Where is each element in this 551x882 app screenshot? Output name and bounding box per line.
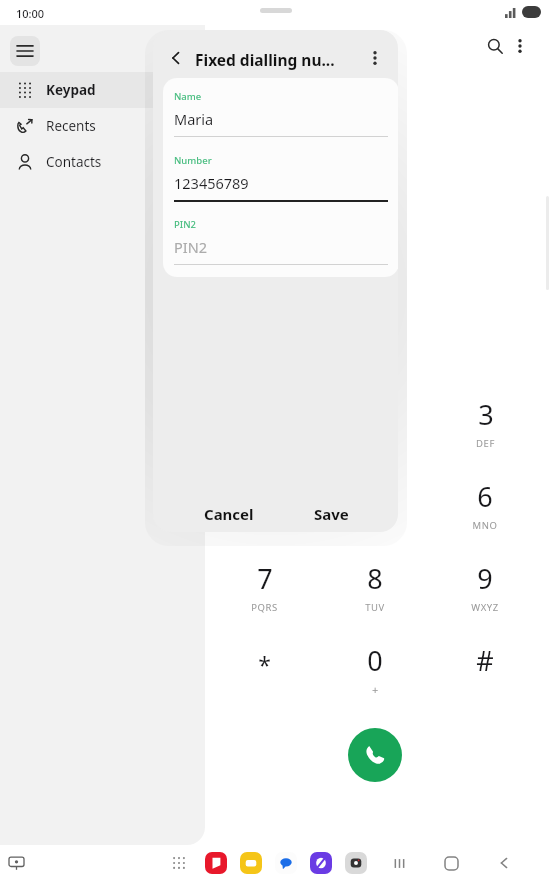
- staticText: 9: [477, 560, 493, 597]
- button[interactable]: Dial 4: [224, 463, 304, 537]
- staticText: 6: [477, 478, 493, 515]
- button[interactable]: Dial 9: [445, 545, 525, 619]
- staticText: Cancel: [204, 504, 254, 524]
- button[interactable]: More options: [506, 32, 534, 60]
- button[interactable]: Recent apps: [385, 849, 413, 877]
- staticText: Name: [174, 90, 202, 103]
- button[interactable]: Dial 2: [335, 381, 415, 455]
- button[interactable]: App: [240, 852, 262, 874]
- staticText: 0: [367, 642, 383, 679]
- button[interactable]: Edge panel: [2, 849, 30, 877]
- staticText: +: [372, 682, 379, 697]
- button[interactable]: Search: [481, 32, 509, 60]
- button[interactable]: Dial 5: [335, 463, 415, 537]
- button[interactable]: Dial 6: [445, 463, 525, 537]
- button[interactable]: Dial #: [445, 627, 525, 701]
- button[interactable]: Dial 8: [335, 545, 415, 619]
- button[interactable]: Keypad: [0, 72, 205, 108]
- button[interactable]: Back: [161, 43, 191, 73]
- staticText: 123456789: [174, 173, 249, 193]
- staticText: PIN2: [174, 218, 196, 231]
- staticText: 7: [257, 560, 273, 597]
- staticText: 8: [367, 560, 383, 597]
- staticText: Recents: [46, 117, 96, 135]
- staticText: PIN2: [174, 237, 208, 257]
- staticText: MNO: [472, 519, 498, 532]
- staticText: PQRS: [251, 601, 278, 614]
- button[interactable]: Recents: [0, 108, 205, 144]
- button[interactable]: App: [345, 852, 367, 874]
- button[interactable]: Contacts: [0, 144, 205, 180]
- staticText: #: [476, 642, 494, 679]
- button[interactable]: Dial *: [224, 627, 304, 701]
- staticText: WXYZ: [471, 601, 499, 614]
- button[interactable]: Call: [348, 728, 402, 782]
- staticText: 10:00: [16, 6, 45, 21]
- staticText: Fixed dialling nu...: [195, 49, 335, 70]
- staticText: Keypad: [46, 81, 96, 99]
- button[interactable]: More options: [360, 43, 390, 73]
- button[interactable]: Apps: [165, 849, 193, 877]
- button[interactable]: Cancel: [179, 496, 279, 532]
- staticText: TUV: [365, 601, 385, 614]
- button[interactable]: Dial 3: [445, 381, 525, 455]
- staticText: Contacts: [46, 153, 102, 171]
- button[interactable]: App: [275, 852, 297, 874]
- staticText: Save: [314, 504, 349, 524]
- button[interactable]: Home: [437, 849, 465, 877]
- button[interactable]: Dial 0: [335, 627, 415, 701]
- button[interactable]: App: [205, 852, 227, 874]
- staticText: Maria: [174, 109, 214, 129]
- button[interactable]: Back: [490, 849, 518, 877]
- staticText: *: [258, 649, 271, 680]
- button[interactable]: Save: [281, 496, 381, 532]
- staticText: DEF: [476, 437, 495, 450]
- button[interactable]: App: [310, 852, 332, 874]
- button[interactable]: Dial 7: [224, 545, 304, 619]
- button[interactable]: Menu: [10, 36, 40, 66]
- staticText: Number: [174, 154, 212, 167]
- staticText: 3: [478, 396, 494, 433]
